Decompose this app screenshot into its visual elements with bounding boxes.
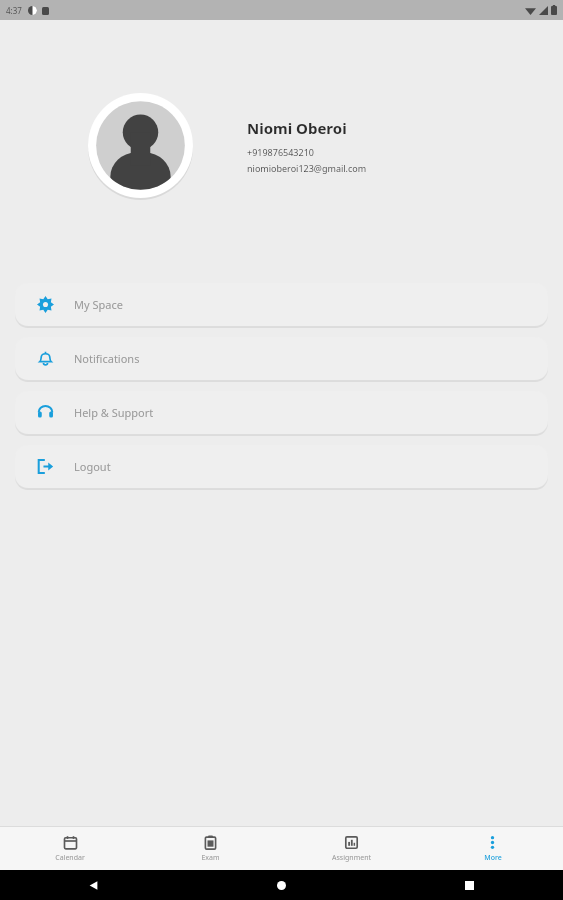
- staticText: Exam: [201, 853, 220, 863]
- staticText: Help & Support: [74, 405, 154, 420]
- staticText: niomioberoi123@gmail.com: [247, 162, 367, 174]
- button[interactable]: Assignment: [281, 831, 422, 867]
- staticText: More: [484, 853, 502, 863]
- button[interactable]: Help & Support: [15, 391, 548, 434]
- button[interactable]: My Space: [15, 283, 548, 326]
- button[interactable]: Logout: [15, 445, 548, 488]
- staticText: +919876543210: [247, 146, 314, 158]
- button[interactable]: More: [422, 831, 563, 867]
- staticText: Assignment: [332, 853, 371, 863]
- staticText: Logout: [74, 459, 111, 474]
- staticText: Notifications: [74, 351, 140, 366]
- button[interactable]: Calendar: [0, 831, 140, 867]
- button[interactable]: Notifications: [15, 337, 548, 380]
- staticText: Niomi Oberoi: [247, 118, 347, 138]
- button[interactable]: Exam: [140, 831, 281, 867]
- staticText: Calendar: [55, 853, 85, 863]
- staticText: 4:37: [6, 5, 22, 16]
- staticText: My Space: [74, 297, 123, 312]
